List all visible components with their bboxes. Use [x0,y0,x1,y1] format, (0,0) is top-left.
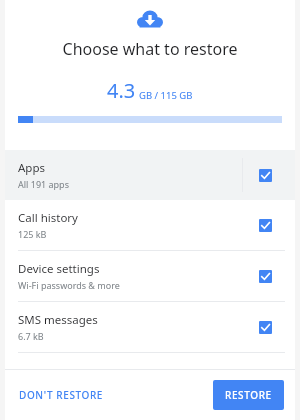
staticText: Apps [18,160,46,176]
staticText: RESTORE [225,388,272,402]
staticText: 4.3 [107,77,136,104]
button[interactable]: Apps checkbox [243,150,287,200]
staticText: Choose what to restore [5,38,295,60]
button[interactable]: SMS messages [5,302,295,352]
staticText: DON'T RESTORE [19,388,104,402]
button[interactable]: Device settings [5,251,295,301]
button[interactable]: Device settings checkbox [243,251,287,301]
staticText: Call history [18,210,78,226]
staticText: 6.7 kB [18,330,44,342]
button[interactable]: Call history checkbox [243,200,287,250]
staticText: Device settings [18,261,100,277]
button[interactable]: DON'T RESTORE [12,382,111,408]
staticText: 125 kB [18,228,47,240]
button[interactable]: SMS messages checkbox [243,302,287,352]
staticText: SMS messages [18,312,98,328]
staticText: GB / 115 GB [139,89,193,102]
staticText: Wi-Fi passwords & more [18,279,120,291]
staticText: All 191 apps [18,178,69,190]
button[interactable]: Apps [5,150,295,200]
button[interactable]: Call history [5,200,295,250]
button[interactable]: RESTORE [213,380,284,410]
